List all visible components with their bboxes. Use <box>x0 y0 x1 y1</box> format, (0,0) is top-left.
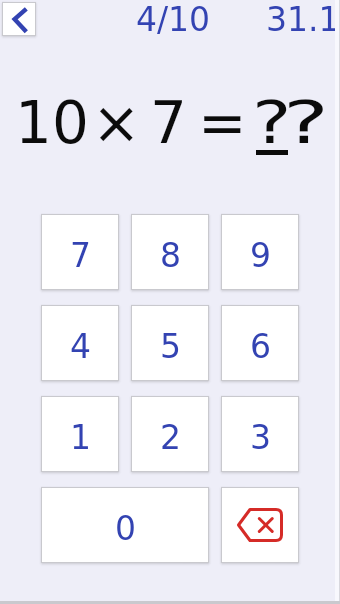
staticText: 3 <box>250 418 271 456</box>
staticText: 7 <box>150 89 187 157</box>
staticText: × <box>92 89 141 157</box>
staticText: 4 <box>70 327 91 365</box>
staticText: ? <box>252 89 292 157</box>
button[interactable] <box>221 487 299 563</box>
button[interactable]: 0 <box>41 487 209 563</box>
button[interactable]: 2 <box>131 396 209 472</box>
button[interactable]: 5 <box>131 305 209 381</box>
staticText: 7 <box>70 236 91 274</box>
staticText: 8 <box>160 236 181 274</box>
staticText: 9 <box>250 236 271 274</box>
button[interactable]: 9 <box>221 214 299 290</box>
button[interactable]: 1 <box>41 396 119 472</box>
staticText: 4/10 <box>136 0 211 38</box>
staticText: 0 <box>115 509 136 547</box>
staticText: ? <box>283 89 329 157</box>
staticText: 6 <box>250 327 271 365</box>
staticText: 5 <box>160 327 181 365</box>
button[interactable]: 6 <box>221 305 299 381</box>
staticText: 2 <box>160 418 181 456</box>
button[interactable]: 4 <box>41 305 119 381</box>
staticText: 31.1 <box>266 0 340 38</box>
staticText: = <box>198 89 247 157</box>
button[interactable]: 8 <box>131 214 209 290</box>
staticText: 10 <box>15 89 89 157</box>
button[interactable]: 3 <box>221 396 299 472</box>
staticText: 1 <box>70 418 91 456</box>
button[interactable] <box>2 2 36 36</box>
button[interactable]: 7 <box>41 214 119 290</box>
